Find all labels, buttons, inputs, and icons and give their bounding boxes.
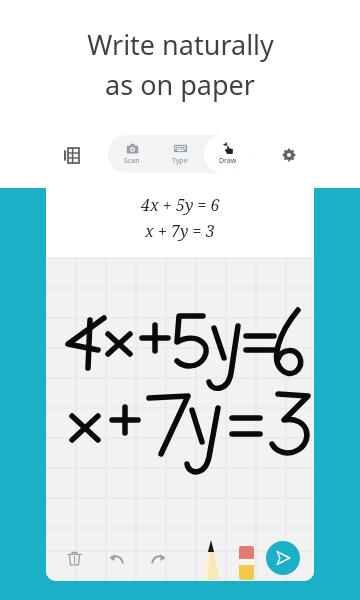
button[interactable]: Send [266, 541, 300, 575]
staticText: as on paper [105, 66, 255, 103]
staticText: 4x + 5y = 6 [141, 194, 220, 216]
button[interactable]: Undo [102, 544, 130, 572]
staticText: Write naturally [87, 26, 274, 63]
staticText: Type [172, 156, 188, 166]
staticText: x + 7y = 3 [145, 220, 215, 242]
staticText: Scan [124, 156, 140, 166]
button[interactable]: Settings [272, 138, 306, 172]
button[interactable]: Draw [204, 135, 252, 173]
button[interactable]: Scan [108, 135, 156, 173]
button[interactable]: History [54, 138, 88, 172]
button[interactable]: Type [156, 135, 204, 173]
button[interactable]: Eraser [234, 536, 258, 580]
staticText: Draw [219, 156, 237, 166]
button[interactable]: Pen [198, 536, 224, 580]
button[interactable]: Redo [144, 544, 172, 572]
button[interactable]: Delete [60, 544, 88, 572]
